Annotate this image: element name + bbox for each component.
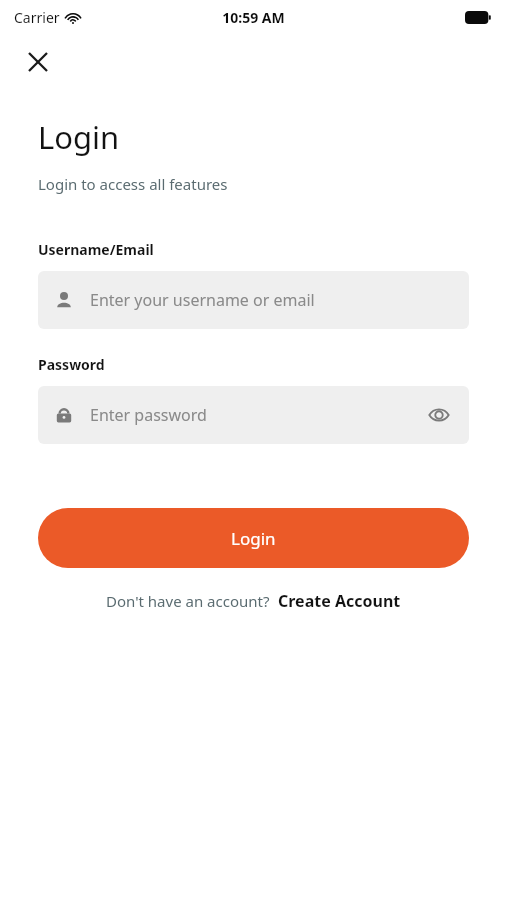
button[interactable]: Login xyxy=(38,508,469,568)
staticText: Enter your username or email xyxy=(90,289,453,311)
button[interactable]: Close xyxy=(18,42,58,82)
staticText: Login xyxy=(231,527,276,550)
staticText: Don't have an account? xyxy=(106,591,270,611)
staticText: Login xyxy=(38,116,120,158)
staticText: Enter password xyxy=(90,404,425,426)
button[interactable]: Show password xyxy=(425,401,453,429)
button[interactable]: Don't have an account? xyxy=(38,590,469,612)
staticText: Create Account xyxy=(278,590,401,612)
staticText: Password xyxy=(38,355,105,374)
staticText: Carrier xyxy=(14,8,60,27)
staticText: Login to access all features xyxy=(38,174,228,194)
button[interactable]: Enter password xyxy=(38,386,469,444)
staticText: 10:59 AM xyxy=(222,8,285,27)
staticText: Username/Email xyxy=(38,240,154,259)
button[interactable]: Enter your username or email xyxy=(38,271,469,329)
